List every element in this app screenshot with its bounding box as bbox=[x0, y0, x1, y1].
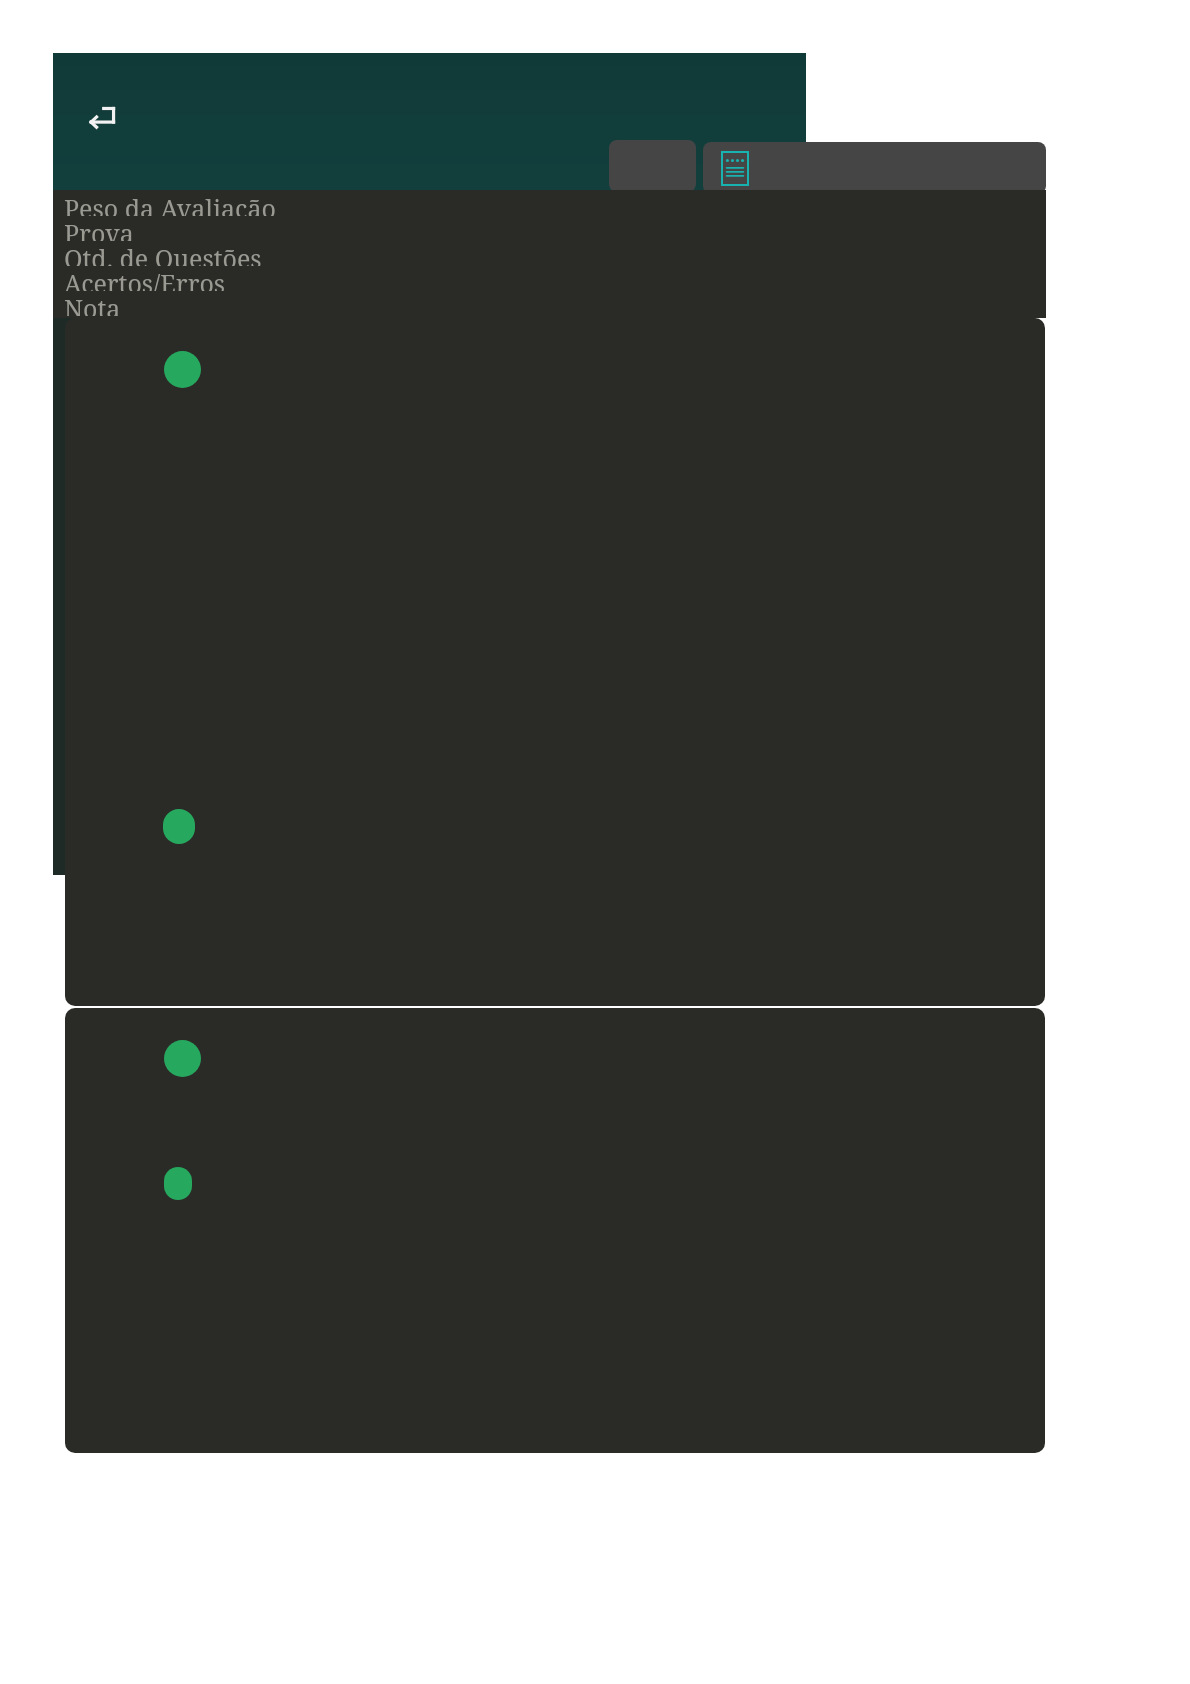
button[interactable]: Provas bbox=[703, 142, 1046, 194]
staticText: Nota bbox=[64, 291, 121, 316]
staticText: Peso da Avaliação bbox=[64, 191, 276, 216]
staticText: Acertos/Erros bbox=[64, 266, 226, 291]
button[interactable]: Voltar bbox=[76, 92, 128, 144]
button[interactable] bbox=[65, 1008, 1045, 1453]
staticText: Prova bbox=[64, 216, 134, 241]
staticText: Qtd. de Questões bbox=[64, 241, 262, 266]
button[interactable] bbox=[65, 318, 1045, 1006]
button[interactable]: Aba anterior bbox=[609, 140, 696, 192]
